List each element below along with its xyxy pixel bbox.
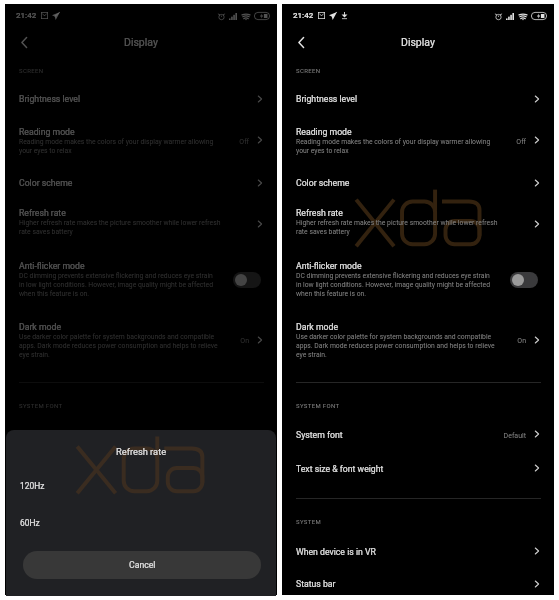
- staticText: Reading mode: [19, 127, 75, 137]
- button[interactable]: [5, 570, 277, 600]
- staticText: Dark mode: [296, 322, 339, 332]
- button[interactable]: [282, 570, 554, 600]
- staticText: 120Hz: [20, 481, 45, 491]
- staticText: Reading mode makes the colors of your di…: [296, 138, 497, 155]
- button[interactable]: [282, 538, 554, 568]
- button[interactable]: [5, 252, 277, 302]
- button[interactable]: [282, 252, 554, 302]
- staticText: On: [494, 337, 526, 345]
- button[interactable]: [5, 169, 277, 199]
- staticText: 21:42: [293, 11, 314, 20]
- staticText: System font: [296, 430, 343, 440]
- button[interactable]: [5, 118, 277, 168]
- staticText: SYSTEM: [296, 518, 322, 525]
- staticText: DC dimming prevents extensive flickering…: [19, 272, 219, 298]
- staticText: Use darker color palette for system back…: [19, 333, 220, 359]
- staticText: Cancel: [129, 560, 156, 570]
- staticText: Display: [124, 36, 158, 48]
- staticText: Reading mode: [296, 127, 352, 137]
- staticText: Refresh rate: [19, 208, 66, 218]
- staticText: SCREEN: [19, 67, 44, 74]
- button[interactable]: [282, 421, 554, 451]
- staticText: DC dimming prevents extensive flickering…: [296, 272, 496, 298]
- button[interactable]: [282, 313, 554, 363]
- staticText: SYSTEM FONT: [296, 402, 340, 409]
- staticText: 21:42: [16, 11, 37, 20]
- staticText: Refresh rate: [296, 208, 343, 218]
- button[interactable]: [282, 455, 554, 485]
- button[interactable]: Back: [11, 29, 37, 55]
- button[interactable]: [5, 421, 277, 451]
- button[interactable]: [5, 455, 277, 485]
- staticText: Brightness level: [19, 94, 81, 104]
- staticText: Anti-flicker mode: [296, 261, 362, 271]
- button[interactable]: [282, 118, 554, 168]
- staticText: Text size & font weight: [19, 464, 107, 474]
- button[interactable]: [5, 538, 277, 568]
- staticText: Text size & font weight: [296, 464, 384, 474]
- staticText: Use darker color palette for system back…: [296, 333, 497, 359]
- button[interactable]: [282, 199, 554, 249]
- staticText: SYSTEM: [19, 518, 45, 525]
- button[interactable]: Anti-flicker mode toggle: [510, 272, 538, 288]
- staticText: Color scheme: [296, 178, 350, 188]
- staticText: Display: [401, 36, 435, 48]
- staticText: Default: [494, 432, 526, 440]
- button[interactable]: Back: [288, 29, 314, 55]
- staticText: Off: [217, 138, 249, 146]
- staticText: Brightness level: [296, 94, 358, 104]
- staticText: 60Hz: [20, 518, 40, 528]
- button[interactable]: [5, 85, 277, 115]
- staticText: Off: [494, 138, 526, 146]
- button[interactable]: [5, 313, 277, 363]
- button[interactable]: [282, 169, 554, 199]
- staticText: Status bar: [296, 579, 336, 589]
- staticText: On: [217, 337, 249, 345]
- button[interactable]: [282, 85, 554, 115]
- staticText: SCREEN: [296, 67, 321, 74]
- button[interactable]: 120Hz: [6, 472, 276, 506]
- staticText: Higher refresh rate makes the picture sm…: [19, 219, 222, 236]
- button[interactable]: 60Hz: [6, 509, 276, 543]
- staticText: When device is in VR: [19, 547, 99, 557]
- staticText: Anti-flicker mode: [19, 261, 85, 271]
- button[interactable]: Anti-flicker mode toggle: [233, 272, 261, 288]
- staticText: Higher refresh rate makes the picture sm…: [296, 219, 499, 236]
- button[interactable]: [5, 199, 277, 249]
- staticText: When device is in VR: [296, 547, 376, 557]
- staticText: Dark mode: [19, 322, 62, 332]
- staticText: SYSTEM FONT: [19, 402, 63, 409]
- staticText: Reading mode makes the colors of your di…: [19, 138, 220, 155]
- button[interactable]: Cancel: [23, 551, 261, 579]
- staticText: Color scheme: [19, 178, 73, 188]
- staticText: Refresh rate: [116, 446, 167, 457]
